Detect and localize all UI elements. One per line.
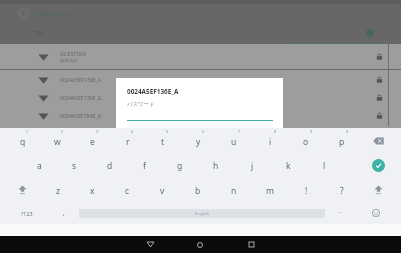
button[interactable]: d [92, 153, 127, 177]
button[interactable]: g [162, 153, 198, 177]
button[interactable]: f [127, 153, 162, 177]
button[interactable]: 6 [180, 128, 216, 153]
staticText: d [107, 160, 113, 172]
button[interactable]: English [79, 209, 325, 218]
button[interactable]: Back [138, 236, 162, 253]
staticText: 3 [96, 129, 99, 134]
staticText: 7 [238, 129, 241, 134]
button[interactable]: , [49, 202, 79, 224]
staticText: 0 [346, 129, 349, 134]
button[interactable]: 5 [145, 128, 180, 153]
button[interactable]: 0024A5EF136E_A [0, 70, 401, 88]
button[interactable]: b [180, 177, 216, 202]
staticText: j [251, 160, 254, 172]
button[interactable]: x [75, 177, 110, 202]
staticText: 1 [26, 129, 29, 134]
staticText: 0024A5EF136E_A [60, 76, 102, 83]
staticText: q [20, 136, 26, 148]
button[interactable]: ! [288, 177, 324, 202]
button[interactable]: 3 [75, 128, 110, 153]
staticText: 5 [166, 129, 169, 134]
button[interactable]: 4 [110, 128, 145, 153]
button[interactable]: a [22, 153, 57, 177]
staticText: 8 [274, 129, 277, 134]
button[interactable]: v [145, 177, 180, 202]
button[interactable]: m [252, 177, 288, 202]
button[interactable]: 0024A5EF784E_G [0, 124, 401, 142]
staticText: 0024A5EF136E_A [127, 87, 179, 96]
staticText: 0024A5EF784E_G [60, 130, 102, 137]
button[interactable]: j [234, 153, 270, 177]
staticText: m [266, 185, 274, 197]
staticText: 0024A5EF784E_A [60, 112, 102, 119]
staticText: 4 [131, 129, 134, 134]
button[interactable]: 1 [5, 128, 40, 153]
button[interactable]: l [306, 153, 342, 177]
staticText: . [339, 206, 341, 216]
button[interactable]: 0 [324, 128, 360, 153]
button[interactable]: Backspace [360, 128, 396, 153]
staticText: , [63, 208, 65, 218]
staticText: o [303, 136, 309, 148]
staticText: 0024A5EF136E_G [60, 94, 102, 101]
staticText: p [339, 136, 345, 148]
button[interactable]: 2 [40, 128, 75, 153]
button[interactable]: n [216, 177, 252, 202]
staticText: ?123 [21, 210, 33, 217]
button[interactable]: ?123 [5, 202, 49, 224]
staticText: h [213, 160, 219, 172]
button[interactable]: z [40, 177, 75, 202]
button[interactable]: Enter [372, 159, 385, 172]
staticText: a [37, 160, 42, 172]
staticText: i [269, 136, 272, 148]
button[interactable]: h [198, 153, 234, 177]
staticText: ! [305, 185, 308, 197]
staticText: e [90, 136, 95, 148]
button[interactable]: Shift [5, 177, 40, 202]
button[interactable]: 7 [216, 128, 252, 153]
button[interactable]: 0024A5EF784E_A [0, 106, 401, 124]
button[interactable]: 8 [252, 128, 288, 153]
staticText: 接続済み [60, 58, 78, 64]
button[interactable]: GUESTSSN [0, 44, 401, 69]
button[interactable]: Shift [360, 177, 396, 202]
staticText: 9 [310, 129, 313, 134]
staticText: z [56, 185, 60, 197]
button[interactable]: Emoji [355, 202, 396, 224]
staticText: k [286, 160, 291, 172]
staticText: GUESTSSN [60, 50, 86, 57]
staticText: x [90, 185, 95, 197]
staticText: g [177, 160, 183, 172]
staticText: y [196, 136, 201, 148]
staticText: t [161, 136, 165, 148]
staticText: ? [340, 185, 344, 197]
button[interactable]: Recent apps [239, 236, 263, 253]
staticText: n [231, 185, 237, 197]
button[interactable]: k [270, 153, 306, 177]
staticText: w [54, 136, 61, 148]
button[interactable]: c [110, 177, 145, 202]
staticText: パスワード [127, 101, 155, 108]
staticText: f [143, 160, 146, 172]
staticText: u [231, 136, 237, 148]
button[interactable]: s [57, 153, 92, 177]
staticText: c [125, 185, 130, 197]
staticText: v [160, 185, 165, 197]
button[interactable]: ? [324, 177, 360, 202]
button[interactable]: Home [188, 236, 212, 253]
staticText: Wi-Fiの設定 [39, 9, 73, 17]
button[interactable]: 0024A5EF136E_G [0, 88, 401, 106]
staticText: 2 [61, 129, 64, 134]
staticText: b [195, 185, 201, 197]
staticText: r [126, 136, 130, 148]
staticText: ON [34, 29, 43, 37]
staticText: l [323, 160, 326, 172]
button[interactable]: Back [17, 7, 30, 20]
button[interactable]: 9 [288, 128, 324, 153]
staticText: 6 [202, 129, 205, 134]
staticText: s [72, 160, 77, 172]
staticText: English [195, 211, 210, 217]
